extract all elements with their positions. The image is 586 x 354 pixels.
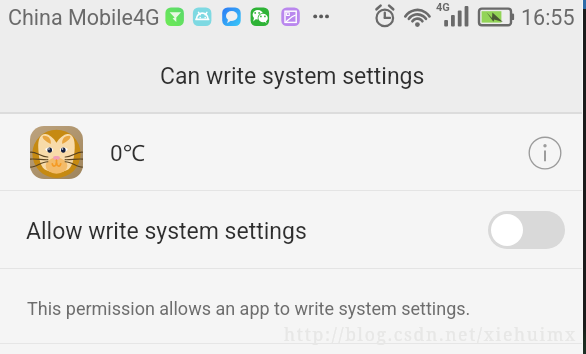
button[interactable]: Allow write system settings toggle [488, 211, 565, 249]
staticText: http://blog.csdn.net/xiehuimx [284, 322, 577, 346]
staticText: 0℃ [110, 137, 146, 168]
staticText: China Mobile4G [8, 5, 160, 30]
staticText: 16:55 [521, 5, 575, 30]
staticText: 4G [436, 1, 450, 14]
staticText: This permission allows an app to write s… [27, 298, 471, 319]
staticText: Allow write system settings [26, 218, 307, 245]
button[interactable]: Allow write system settings [0, 191, 586, 268]
button[interactable]: 0℃ [0, 114, 586, 191]
staticText: Can write system settings [160, 63, 425, 90]
button[interactable]: App info [523, 131, 567, 175]
